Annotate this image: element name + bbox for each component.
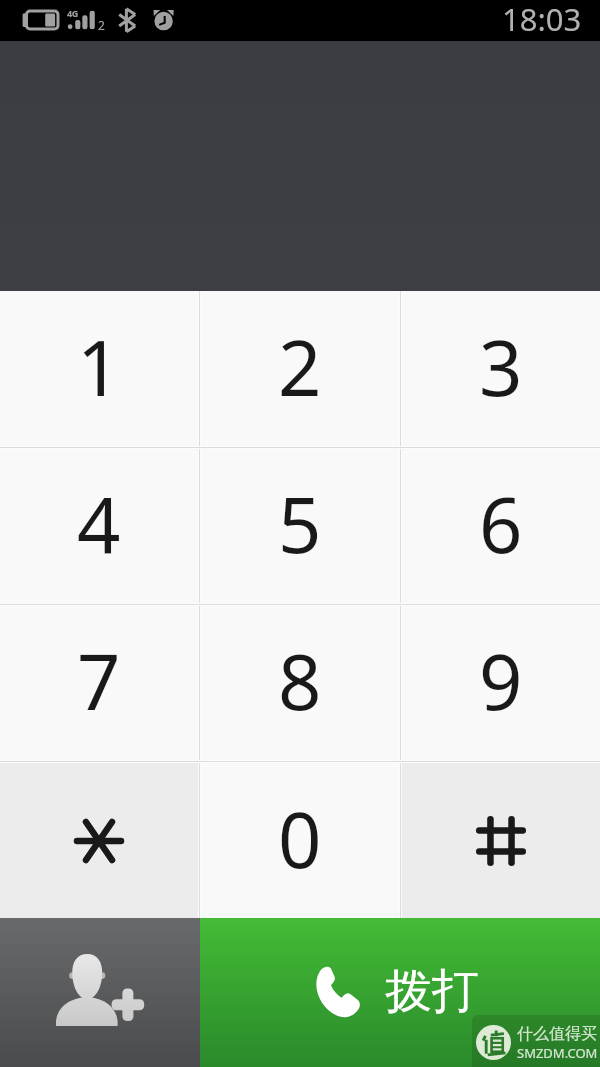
staticText: 18:03 (502, 0, 582, 39)
staticText: 9 (479, 629, 523, 733)
staticText: 拨打 (385, 962, 479, 1021)
button[interactable]: 0 (201, 763, 399, 918)
staticText: 1 (77, 315, 121, 419)
button[interactable]: 4 (0, 449, 198, 603)
button[interactable]: Add contact (0, 918, 200, 1067)
button[interactable]: 7 (0, 606, 198, 760)
other: Star (68, 810, 130, 872)
staticText: 3 (479, 315, 523, 419)
button[interactable]: 5 (201, 449, 399, 603)
staticText: 4 (77, 472, 121, 576)
button[interactable]: 拨打 (200, 918, 600, 1067)
button[interactable]: 2 (201, 291, 399, 446)
button[interactable]: 1 (0, 291, 198, 446)
button[interactable]: Star (0, 763, 198, 918)
staticText: 8 (278, 629, 322, 733)
staticText: 什么值得买 (517, 1024, 597, 1044)
staticText: 2 (278, 315, 322, 419)
button[interactable]: 3 (402, 291, 600, 446)
staticText: 5 (278, 472, 322, 576)
staticText: 0 (278, 787, 322, 891)
staticText: 6 (479, 472, 523, 576)
other: Pound (470, 810, 532, 872)
staticText: 2 (98, 17, 105, 33)
button[interactable]: 8 (201, 606, 399, 760)
button[interactable]: 9 (402, 606, 600, 760)
staticText: 7 (77, 629, 121, 733)
staticText: SMZDM.COM (517, 1044, 598, 1062)
button[interactable]: 6 (402, 449, 600, 603)
button[interactable]: Pound (402, 763, 600, 918)
staticText: 4G (67, 7, 79, 19)
